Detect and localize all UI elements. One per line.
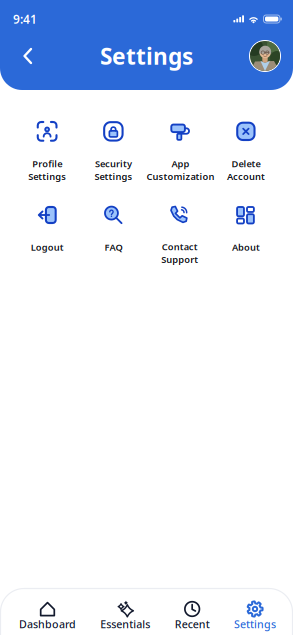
staticText: Settings <box>28 170 66 183</box>
staticText: Account <box>227 170 265 183</box>
staticText: FAQ <box>104 241 122 253</box>
button[interactable]: Security <box>80 120 146 182</box>
staticText: Settings <box>234 617 276 631</box>
staticText: Dashboard <box>19 617 76 631</box>
button[interactable]: Logout <box>14 203 80 265</box>
button[interactable]: Profile <box>249 40 281 72</box>
staticText: Logout <box>31 241 64 253</box>
button[interactable]: Back <box>12 40 44 72</box>
button[interactable]: Delete <box>213 120 279 182</box>
button[interactable]: App <box>146 120 213 182</box>
staticText: Profile <box>32 157 62 170</box>
staticText: Recent <box>175 617 210 631</box>
staticText: Essentials <box>100 617 150 631</box>
staticText: About <box>232 241 260 253</box>
button[interactable]: Essentials <box>100 600 150 630</box>
button[interactable]: Contact <box>146 203 213 265</box>
staticText: 9:41 <box>13 11 37 27</box>
staticText: App <box>171 157 189 170</box>
staticText: Contact <box>162 240 198 253</box>
button[interactable]: Settings <box>234 600 276 630</box>
staticText: Settings <box>94 170 132 183</box>
staticText: Support <box>161 253 198 266</box>
staticText: Settings <box>100 41 193 71</box>
staticText: Security <box>95 157 132 170</box>
button[interactable]: FAQ <box>80 203 146 265</box>
staticText: Delete <box>231 157 260 170</box>
button[interactable]: About <box>213 203 279 265</box>
button[interactable]: Recent <box>175 600 210 630</box>
staticText: Customization <box>146 170 214 183</box>
button[interactable]: Dashboard <box>19 600 76 630</box>
button[interactable]: Profile <box>14 120 80 182</box>
